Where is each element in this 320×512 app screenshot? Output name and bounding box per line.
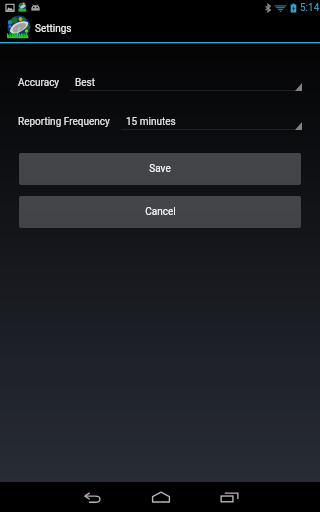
staticText: Best <box>75 77 95 89</box>
button[interactable]: Save <box>19 153 301 185</box>
staticText: Accuracy <box>18 77 60 89</box>
button[interactable]: Cancel <box>19 196 301 228</box>
staticText: Cancel <box>145 206 176 218</box>
staticText: Settings <box>35 23 72 35</box>
button[interactable]: 15 minutes <box>121 112 302 130</box>
staticText: Reporting Frequency <box>18 116 110 128</box>
button[interactable]: Back <box>58 482 126 512</box>
button[interactable]: Best <box>70 73 302 91</box>
button[interactable]: Home <box>127 482 195 512</box>
staticText: 5:14 <box>300 2 320 14</box>
staticText: 15 minutes <box>126 116 176 128</box>
button[interactable]: Recent apps <box>195 482 263 512</box>
staticText: Save <box>149 163 171 175</box>
